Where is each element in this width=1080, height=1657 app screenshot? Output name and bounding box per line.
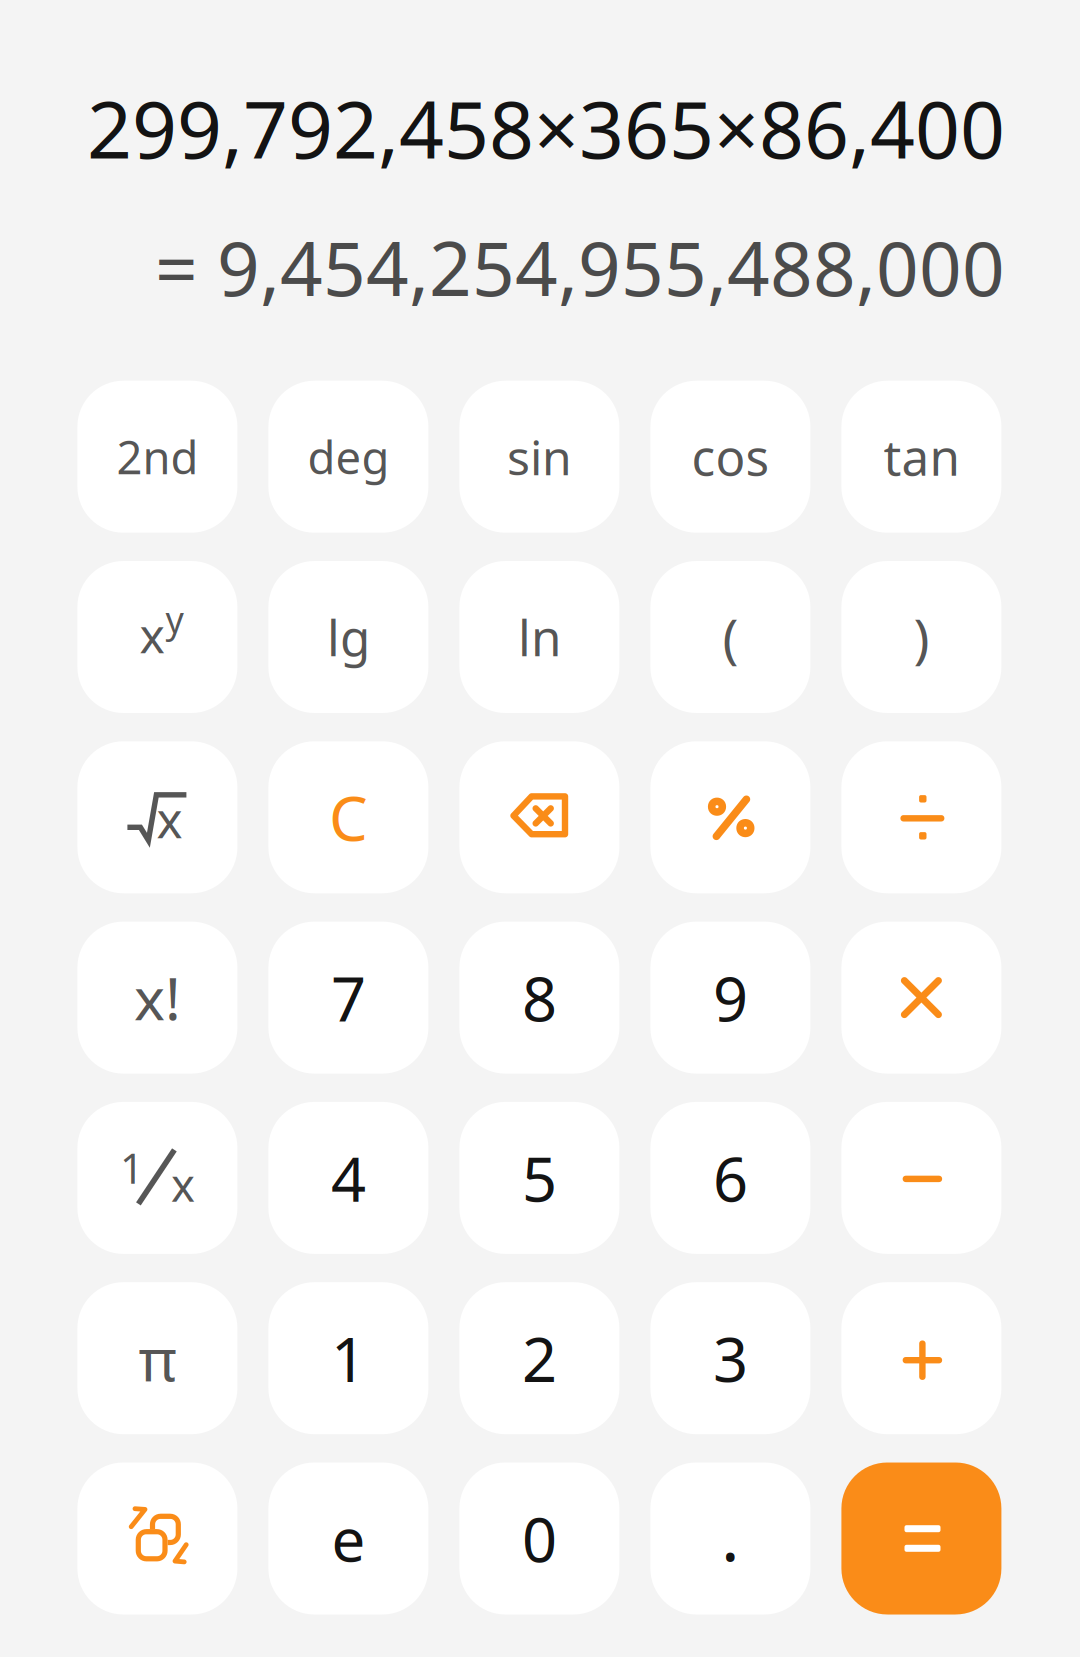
staticText: x	[139, 603, 164, 666]
button[interactable]: lg	[268, 561, 428, 713]
staticText: e	[331, 1499, 365, 1578]
staticText: π	[138, 1319, 176, 1397]
staticText: (	[722, 602, 738, 672]
staticText: 2nd	[116, 427, 198, 487]
button[interactable]: Plus	[841, 1282, 1001, 1434]
button[interactable]: π	[77, 1282, 237, 1434]
staticText: 7	[331, 957, 366, 1038]
button[interactable]: 3	[650, 1282, 810, 1434]
button[interactable]: sin	[459, 381, 619, 533]
staticText: ln	[518, 604, 561, 670]
staticText: x	[171, 1154, 195, 1214]
button[interactable]: Percent	[650, 741, 810, 893]
button[interactable]: one divided by x	[77, 1102, 237, 1254]
staticText: 1	[331, 1317, 366, 1399]
staticText: cos	[691, 424, 769, 489]
button[interactable]: 4	[268, 1102, 428, 1254]
staticText: 2	[522, 1317, 557, 1399]
button[interactable]: x to the power of y	[77, 561, 237, 713]
button[interactable]: tan	[841, 381, 1001, 533]
button[interactable]: Divide	[841, 741, 1001, 893]
staticText: 5	[522, 1137, 557, 1219]
button[interactable]: Delete	[459, 741, 619, 893]
button[interactable]: 1	[268, 1282, 428, 1434]
button[interactable]: 5	[459, 1102, 619, 1254]
button[interactable]: deg	[268, 381, 428, 533]
staticText: x!	[134, 959, 181, 1036]
button[interactable]: Equals	[841, 1462, 1001, 1614]
button[interactable]: 2	[459, 1282, 619, 1434]
button[interactable]: C	[268, 741, 428, 893]
staticText: deg	[307, 427, 389, 487]
button[interactable]: 0	[459, 1462, 619, 1614]
staticText: y	[165, 595, 183, 643]
button[interactable]: 6	[650, 1102, 810, 1254]
staticText: 3	[713, 1317, 748, 1399]
button[interactable]: 2nd	[77, 381, 237, 533]
staticText: = 9,454,254,955,488,000	[155, 217, 1005, 317]
button[interactable]: 8	[459, 922, 619, 1074]
button[interactable]: Minus	[841, 1102, 1001, 1254]
staticText: x	[156, 786, 182, 852]
button[interactable]: Unit conversion	[77, 1462, 237, 1614]
button[interactable]: x!	[77, 922, 237, 1074]
staticText: 9	[713, 957, 748, 1038]
staticText: .	[721, 1488, 740, 1581]
staticText: 299,792,458×365×86,400	[87, 76, 1005, 180]
staticText: tan	[883, 424, 959, 489]
button[interactable]: square root of x	[77, 741, 237, 893]
button[interactable]: cos	[650, 381, 810, 533]
button[interactable]: 7	[268, 922, 428, 1074]
staticText: 1	[120, 1140, 144, 1195]
staticText: sin	[507, 425, 572, 488]
staticText: 4	[331, 1137, 366, 1219]
button[interactable]: ln	[459, 561, 619, 713]
staticText: lg	[327, 604, 370, 670]
button[interactable]: 9	[650, 922, 810, 1074]
button[interactable]: e	[268, 1462, 428, 1614]
button[interactable]: Multiply	[841, 922, 1001, 1074]
button[interactable]: .	[650, 1462, 810, 1614]
button[interactable]: (	[650, 561, 810, 713]
staticText: 6	[713, 1137, 748, 1219]
staticText: 0	[522, 1498, 557, 1579]
staticText: C	[329, 777, 368, 858]
staticText: 8	[522, 957, 557, 1038]
button[interactable]: )	[841, 561, 1001, 713]
staticText: )	[913, 602, 929, 672]
